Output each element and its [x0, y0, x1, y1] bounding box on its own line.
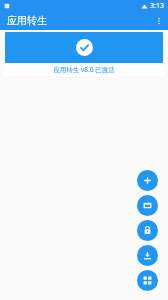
staticText: 应用转生 v8.0 已激活: [53, 65, 115, 74]
button[interactable]: Window: [137, 195, 158, 216]
button[interactable]: Apps: [137, 270, 158, 291]
button[interactable]: Download: [137, 245, 158, 266]
button[interactable]: 应用转生 v8.0 已激活: [5, 32, 163, 76]
staticText: 应用转生: [7, 14, 47, 27]
button[interactable]: More options: [150, 12, 168, 30]
button[interactable]: Add: [137, 170, 158, 191]
button[interactable]: Lock: [137, 220, 158, 241]
staticText: 3:13: [150, 1, 164, 11]
